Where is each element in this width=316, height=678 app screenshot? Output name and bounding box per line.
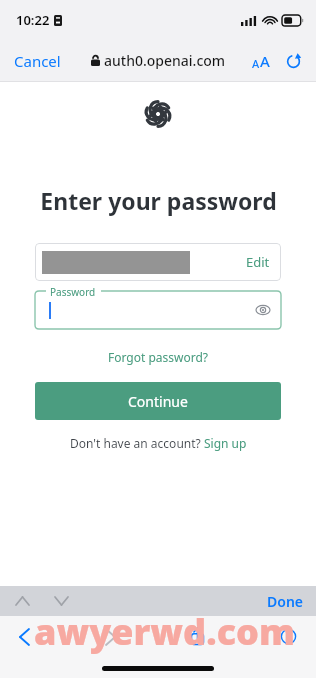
button[interactable]: Back <box>14 623 35 651</box>
staticText: Sign up <box>204 435 247 451</box>
button[interactable]: Forgot password? <box>100 347 217 367</box>
button[interactable]: Show password <box>253 300 273 320</box>
button[interactable]: Cancel <box>0 43 75 79</box>
staticText: Terms of use <box>81 663 148 678</box>
button[interactable]: Share <box>185 622 210 651</box>
button[interactable]: Privacy policy <box>166 663 236 678</box>
staticText: auth0.openai.com <box>104 51 226 70</box>
staticText: Edit <box>246 253 270 271</box>
staticText: Forgot password? <box>108 349 209 365</box>
staticText: Password <box>50 285 96 299</box>
button[interactable]: Continue <box>35 382 281 420</box>
staticText: Done <box>267 592 304 611</box>
button[interactable]: Done <box>255 588 316 615</box>
button[interactable]: Reload <box>281 49 306 74</box>
staticText: awyerwd.com <box>34 607 295 656</box>
staticText: | <box>148 663 166 678</box>
staticText: A <box>260 51 270 71</box>
button[interactable]: Sign up <box>204 435 247 451</box>
button[interactable]: Bookmarks <box>275 623 302 650</box>
button[interactable]: Text size <box>247 46 275 76</box>
staticText: Enter your password <box>40 185 277 216</box>
staticText: Continue <box>128 392 188 411</box>
button[interactable]: Previous field <box>10 591 35 611</box>
staticText: Don't have an account? <box>70 435 204 451</box>
staticText: Cancel <box>14 51 61 71</box>
staticText: Privacy policy <box>166 663 236 678</box>
button[interactable]: Terms of use <box>81 663 148 678</box>
button[interactable]: Next field <box>49 591 74 611</box>
staticText: 10:22 <box>16 11 50 29</box>
staticText: A <box>252 56 260 71</box>
button[interactable]: Edit <box>35 243 281 281</box>
button[interactable]: Forward <box>100 623 121 651</box>
